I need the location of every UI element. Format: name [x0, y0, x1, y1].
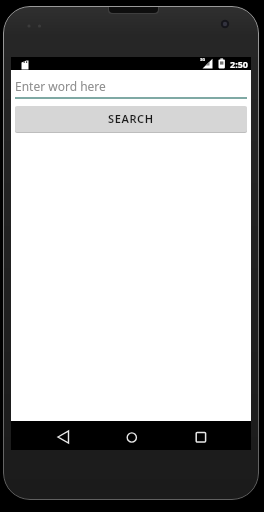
- button[interactable]: SEARCH: [15, 106, 247, 132]
- button[interactable]: [47, 421, 79, 450]
- staticText: 2:50: [230, 58, 248, 70]
- staticText: 3G: [200, 57, 206, 62]
- button[interactable]: [185, 421, 217, 450]
- staticText: Enter word here: [15, 78, 106, 94]
- button[interactable]: [116, 421, 148, 450]
- staticText: SEARCH: [108, 111, 154, 126]
- button[interactable]: Enter word here: [15, 71, 247, 99]
